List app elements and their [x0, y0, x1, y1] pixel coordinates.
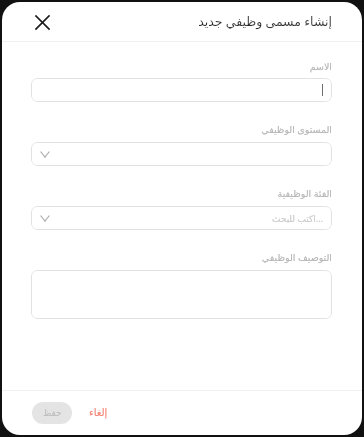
staticText: المستوى الوظيفي [261, 123, 332, 136]
staticText: التوصيف الوظيفي [261, 251, 332, 264]
staticText: الفئة الوظيفية [277, 187, 332, 200]
button[interactable] [31, 78, 332, 102]
staticText: إنشاء مسمى وظيفي جديد [198, 13, 332, 30]
button[interactable] [31, 270, 332, 319]
button[interactable]: إلغاء [85, 402, 112, 424]
button[interactable]: حفظ [32, 402, 72, 424]
staticText: إلغاء [89, 407, 108, 419]
staticText: حفظ [43, 408, 62, 418]
staticText: الاسم [309, 61, 332, 72]
staticText: اكتب للبحث... [272, 212, 323, 224]
button[interactable]: قائمة منسدلة [31, 142, 332, 166]
button[interactable]: إغلاق [30, 10, 54, 34]
button[interactable]: قائمة منسدلة [31, 206, 332, 230]
